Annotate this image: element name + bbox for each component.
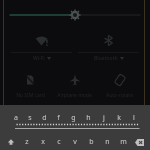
staticText: s — [28, 113, 32, 123]
staticText: v — [73, 137, 77, 147]
staticText: No SIM card — [16, 92, 45, 99]
button[interactable]: s — [23, 112, 37, 123]
button[interactable]: v — [67, 134, 83, 150]
staticText: Airplane mode — [57, 92, 92, 99]
button[interactable]: Backspace — [131, 134, 147, 150]
button[interactable]: b — [83, 134, 99, 150]
staticText: f — [57, 113, 60, 123]
button[interactable]: n — [99, 134, 115, 150]
staticText: Bluetooth — [94, 55, 118, 62]
button[interactable]: a — [9, 112, 23, 123]
button[interactable]: Bluetooth — [78, 28, 139, 64]
staticText: m — [120, 137, 127, 147]
button[interactable]: Shift — [3, 134, 19, 150]
staticText: b — [89, 137, 94, 147]
button[interactable]: Brightness — [8, 8, 142, 22]
button[interactable]: j — [96, 112, 111, 123]
button[interactable]: g — [66, 112, 81, 123]
staticText: Wi-Fi — [33, 55, 45, 62]
button[interactable]: f — [51, 112, 66, 123]
button[interactable]: Wi-Fi — [11, 28, 72, 64]
button[interactable]: No SIM card — [8, 68, 52, 102]
staticText: n — [105, 137, 110, 147]
button[interactable]: c — [51, 134, 67, 150]
button[interactable]: Auto-rotate — [97, 68, 142, 102]
staticText: a — [14, 113, 18, 123]
staticText: k — [117, 113, 121, 123]
button[interactable]: d — [37, 112, 51, 123]
button[interactable]: m — [115, 134, 131, 150]
button[interactable]: l — [126, 112, 141, 123]
staticText: z — [25, 137, 29, 147]
button[interactable]: k — [111, 112, 126, 123]
staticText: Auto-rotate — [106, 92, 133, 99]
staticText: l — [133, 113, 135, 123]
staticText: d — [42, 113, 47, 123]
staticText: g — [71, 113, 76, 123]
staticText: c — [57, 137, 61, 147]
button[interactable]: h — [81, 112, 96, 123]
staticText: h — [86, 113, 91, 123]
button[interactable]: Airplane mode — [52, 68, 97, 102]
button[interactable]: x — [35, 134, 51, 150]
staticText: x — [41, 137, 45, 147]
staticText: j — [103, 113, 105, 123]
button[interactable]: z — [19, 134, 35, 150]
